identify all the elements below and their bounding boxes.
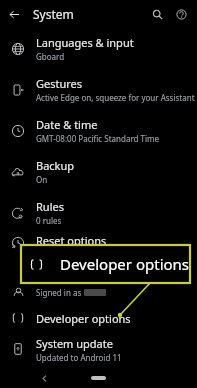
button[interactable]: Back bbox=[36, 370, 52, 386]
button[interactable]: Gestures bbox=[0, 69, 197, 110]
button[interactable]: Search bbox=[146, 3, 168, 25]
staticText: Languages & input bbox=[36, 35, 134, 50]
staticText: GMT-08:00 Pacific Standard Time bbox=[36, 133, 160, 144]
button[interactable]: Signed in as bbox=[0, 279, 197, 305]
button[interactable]: Back bbox=[4, 4, 24, 24]
staticText: Gboard bbox=[36, 51, 65, 62]
staticText: Gestures bbox=[36, 76, 83, 91]
button[interactable]: Rules bbox=[0, 192, 197, 233]
button[interactable]: Help bbox=[170, 3, 192, 25]
staticText: Date & time bbox=[36, 117, 98, 132]
staticText: On bbox=[36, 174, 48, 185]
staticText: Developer options bbox=[36, 311, 131, 326]
staticText: System update bbox=[36, 336, 113, 351]
button[interactable]: System update bbox=[0, 331, 197, 367]
staticText: Updated to Android 11 bbox=[36, 352, 122, 363]
staticText: Signed in as bbox=[36, 287, 84, 298]
staticText: Developer options bbox=[60, 254, 190, 274]
staticText: 0 rules bbox=[36, 215, 62, 226]
button[interactable]: Languages & input bbox=[0, 28, 197, 69]
staticText: Reset options bbox=[36, 233, 107, 248]
button[interactable]: Home bbox=[91, 376, 106, 380]
staticText: Backup bbox=[36, 158, 75, 173]
button[interactable]: Developer options bbox=[21, 245, 190, 283]
button[interactable]: Reset options bbox=[0, 233, 197, 279]
button[interactable]: Backup bbox=[0, 151, 197, 192]
button[interactable]: Developer options bbox=[0, 305, 197, 331]
staticText: Active Edge on, squeeze for your Assista… bbox=[36, 92, 195, 103]
staticText: Rules bbox=[36, 199, 64, 214]
button[interactable]: Date & time bbox=[0, 110, 197, 151]
staticText: System bbox=[33, 6, 74, 22]
